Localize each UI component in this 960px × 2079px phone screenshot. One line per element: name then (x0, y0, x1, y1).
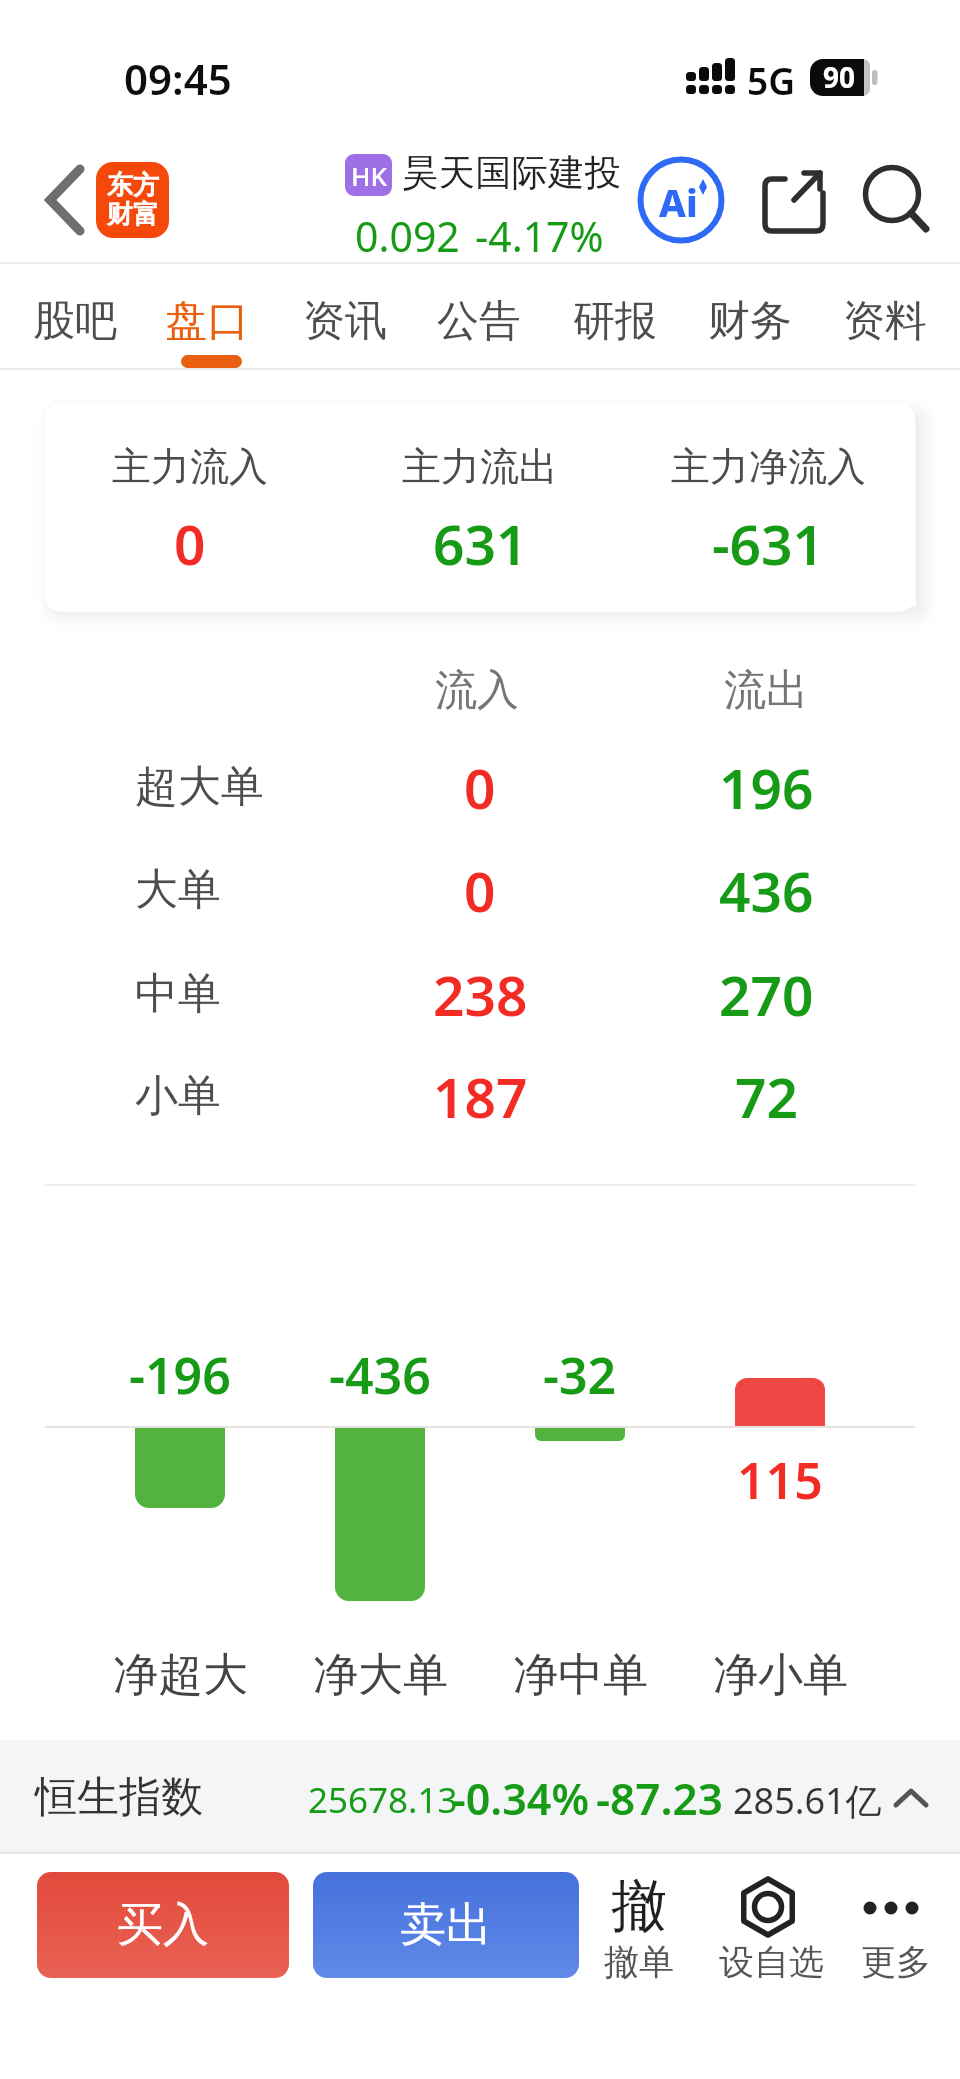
staticText: 买入 (117, 1896, 209, 1954)
button[interactable] (34, 155, 94, 245)
staticText: 净超大 (113, 1647, 248, 1704)
staticText: 436 (719, 853, 814, 928)
staticText: 股吧 (33, 295, 117, 348)
button[interactable]: 研报 (555, 276, 675, 366)
staticText: 净大单 (313, 1647, 448, 1704)
staticText: 主力净流入 (671, 442, 866, 491)
staticText: 研报 (573, 295, 657, 348)
button[interactable]: 资料 (825, 276, 945, 366)
staticText: 流出 (724, 664, 808, 717)
button[interactable] (595, 1862, 685, 1987)
button[interactable]: 东方 (96, 162, 169, 238)
staticText: 小单 (135, 1069, 221, 1123)
staticText: 25678.13 (308, 1776, 458, 1824)
staticText: 238 (433, 957, 528, 1032)
staticText: Ai (659, 176, 698, 228)
staticText: 187 (433, 1059, 528, 1134)
staticText: 撤 (611, 1871, 667, 1942)
staticText: 285.61亿 (733, 1776, 882, 1825)
button[interactable]: 卖出 (313, 1872, 579, 1978)
staticText: 公告 (437, 295, 521, 348)
button[interactable]: 买入 (37, 1872, 289, 1978)
staticText: 主力流出 (402, 442, 558, 491)
staticText: 资讯 (303, 295, 387, 348)
button[interactable]: 资讯 (285, 276, 405, 366)
staticText: -631 (712, 506, 824, 581)
staticText: 196 (719, 750, 814, 825)
staticText: 昊天国际建投 (402, 150, 621, 195)
staticText: 更多 (861, 1940, 931, 1984)
staticText: 超大单 (135, 760, 264, 814)
button[interactable]: Ai (637, 156, 725, 244)
staticText: 09:45 (124, 50, 232, 107)
staticText: 净小单 (713, 1647, 848, 1704)
staticText: -87.23 (596, 1768, 723, 1828)
staticText: 72 (735, 1059, 798, 1134)
staticText: -4.17% (475, 208, 604, 264)
button[interactable] (850, 1862, 945, 1987)
staticText: 5G (747, 55, 796, 105)
staticText: 恒生指数 (35, 1771, 203, 1824)
button[interactable] (722, 1862, 822, 1987)
staticText: HK (351, 158, 387, 193)
staticText: 财富 (107, 198, 159, 231)
button[interactable] (856, 158, 936, 240)
button[interactable] (755, 160, 835, 240)
staticText: 115 (737, 1446, 823, 1514)
staticText: 0.092 (355, 208, 460, 264)
button[interactable]: 盘口 (147, 276, 267, 366)
staticText: -436 (329, 1341, 431, 1409)
button[interactable]: 公告 (419, 276, 539, 366)
staticText: 盘口 (165, 295, 249, 348)
button[interactable]: 股吧 (15, 276, 135, 366)
staticText: 大单 (135, 863, 221, 917)
staticText: 流入 (435, 664, 519, 717)
staticText: 主力流入 (112, 442, 268, 491)
staticText: 中单 (135, 967, 221, 1021)
staticText: -196 (129, 1341, 231, 1409)
staticText: 0 (464, 750, 496, 825)
staticText: -0.34% (452, 1769, 590, 1828)
staticText: 东方 (107, 169, 159, 202)
staticText: 270 (719, 957, 814, 1032)
staticText: 净中单 (513, 1647, 648, 1704)
staticText: 0 (174, 506, 206, 581)
staticText: 90 (823, 58, 856, 96)
staticText: 631 (433, 506, 528, 581)
staticText: 资料 (843, 295, 927, 348)
staticText: -32 (543, 1341, 617, 1409)
staticText: 0 (464, 853, 496, 928)
button[interactable]: 财务 (690, 276, 810, 366)
staticText: 撤单 (604, 1940, 674, 1984)
staticText: 财务 (708, 295, 792, 348)
staticText: 设自选 (719, 1940, 824, 1984)
button[interactable] (0, 1740, 960, 1852)
staticText: 卖出 (400, 1896, 492, 1954)
